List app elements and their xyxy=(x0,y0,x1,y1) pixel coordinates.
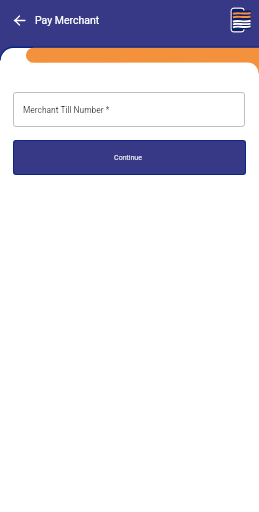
button[interactable]: Continue xyxy=(13,140,246,175)
staticText: Pay Merchant xyxy=(35,14,100,26)
button[interactable]: Back xyxy=(8,9,31,32)
staticText: Continue xyxy=(114,154,142,162)
staticText: Merchant Till Number * xyxy=(23,105,110,115)
button[interactable]: Equitel xyxy=(227,3,255,37)
button[interactable]: Merchant Till Number * xyxy=(13,92,245,127)
